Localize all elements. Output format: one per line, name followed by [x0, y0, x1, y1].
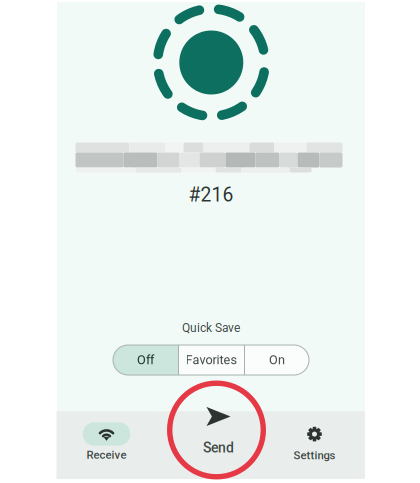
staticText: On [269, 353, 285, 367]
staticText: Off [137, 353, 154, 367]
staticText: Receive [86, 448, 126, 462]
staticText: Quick Save [182, 321, 240, 335]
button[interactable]: On [245, 345, 309, 375]
button[interactable]: Favorites [179, 345, 244, 375]
button[interactable]: Receive [56, 411, 156, 479]
staticText: Settings [293, 449, 335, 462]
button[interactable]: Settings [264, 411, 364, 479]
button[interactable]: Send [168, 411, 268, 479]
staticText: #216 [188, 184, 233, 206]
staticText: Send [203, 440, 234, 456]
staticText: Favorites [185, 353, 237, 367]
button[interactable]: Off [113, 345, 178, 375]
